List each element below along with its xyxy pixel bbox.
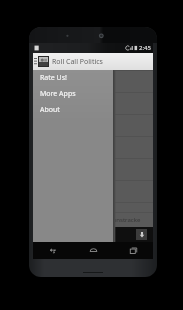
staticText: Roll Call Politics <box>52 57 103 67</box>
button[interactable]: Konstracke <box>33 213 153 227</box>
button[interactable] <box>33 115 153 137</box>
button[interactable]: More Apps <box>33 86 113 102</box>
staticText: More Apps <box>40 89 76 99</box>
button[interactable] <box>33 71 153 93</box>
staticText: Konstracke <box>109 216 141 224</box>
button[interactable] <box>33 203 153 213</box>
button[interactable] <box>33 159 153 181</box>
button[interactable]: Back <box>33 242 73 259</box>
button[interactable]: Recent apps <box>113 242 153 259</box>
button[interactable] <box>33 93 153 115</box>
button[interactable]: Download <box>136 229 147 240</box>
button[interactable]: Rate Us! <box>33 70 113 86</box>
button[interactable]: About <box>33 102 113 118</box>
staticText: About <box>40 105 60 115</box>
button[interactable] <box>33 137 153 159</box>
staticText: 2:45 <box>139 44 151 52</box>
staticText: Rate Us! <box>40 73 67 83</box>
button[interactable]: Home <box>73 242 113 259</box>
button[interactable]: Open navigation drawer <box>33 53 37 70</box>
button[interactable] <box>33 181 153 203</box>
